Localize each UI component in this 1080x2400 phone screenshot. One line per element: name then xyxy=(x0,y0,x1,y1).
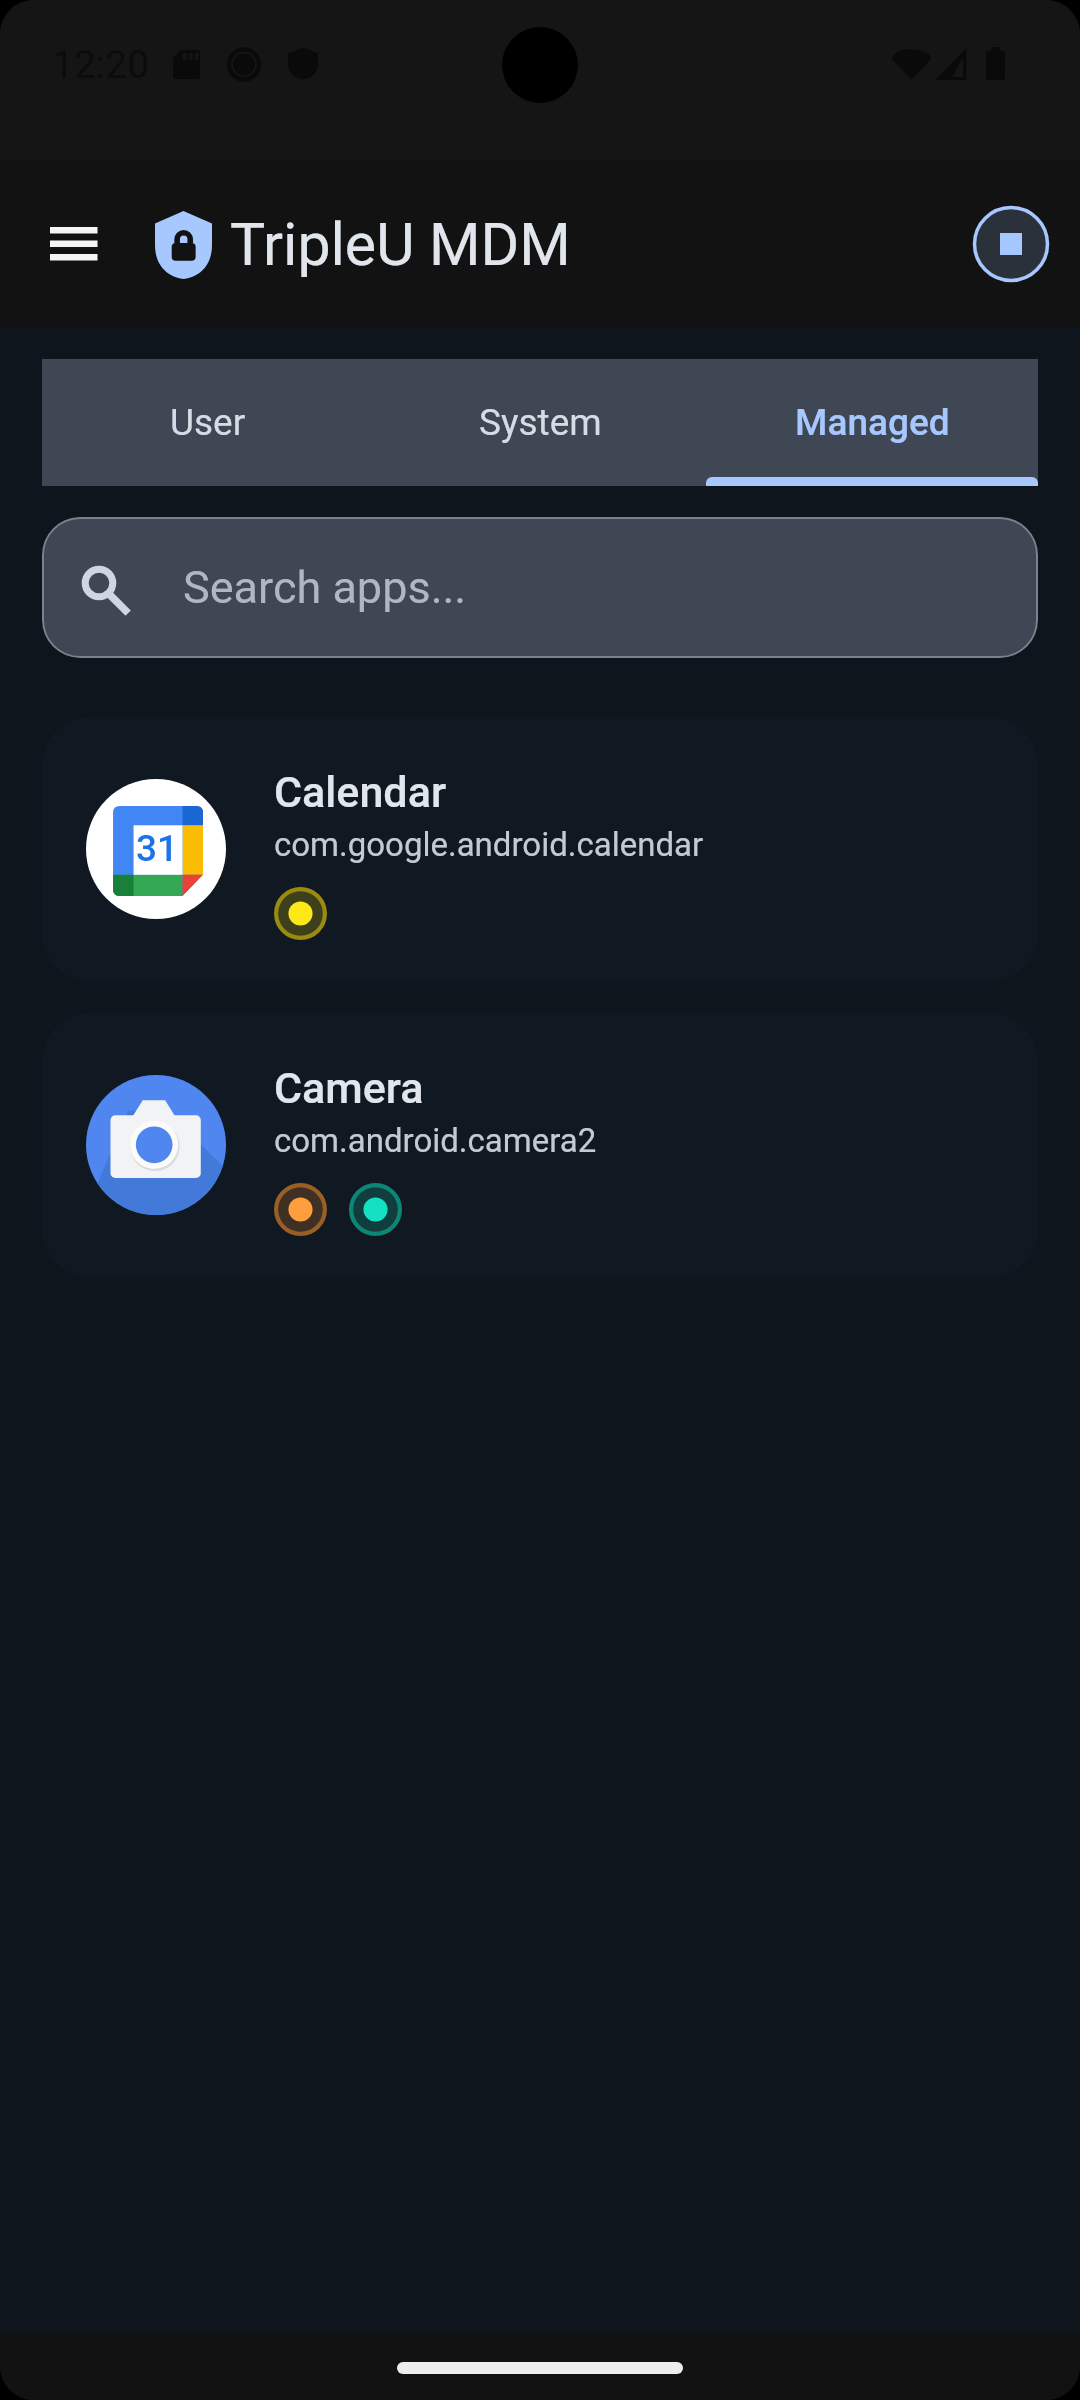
staticText: 31 xyxy=(136,827,179,870)
button[interactable]: 31 xyxy=(42,717,1038,981)
button[interactable]: Search apps... xyxy=(42,517,1038,658)
staticText: com.google.android.calendar xyxy=(274,825,704,864)
staticText: User xyxy=(170,401,246,444)
staticText: TripleU MDM xyxy=(230,210,571,279)
button[interactable]: Managed xyxy=(706,359,1038,486)
button[interactable]: System xyxy=(374,359,706,486)
staticText: Camera xyxy=(274,1063,424,1113)
button[interactable]: Stop xyxy=(965,198,1057,290)
button[interactable]: User xyxy=(42,359,374,486)
button[interactable]: Camera xyxy=(42,1013,1038,1277)
staticText: Managed xyxy=(795,401,950,444)
staticText: System xyxy=(479,401,602,444)
staticText: 12:20 xyxy=(52,42,150,88)
staticText: Calendar xyxy=(274,767,447,817)
staticText: Search apps... xyxy=(183,561,467,614)
staticText: com.android.camera2 xyxy=(274,1121,597,1160)
button[interactable]: Open navigation menu xyxy=(26,196,122,292)
